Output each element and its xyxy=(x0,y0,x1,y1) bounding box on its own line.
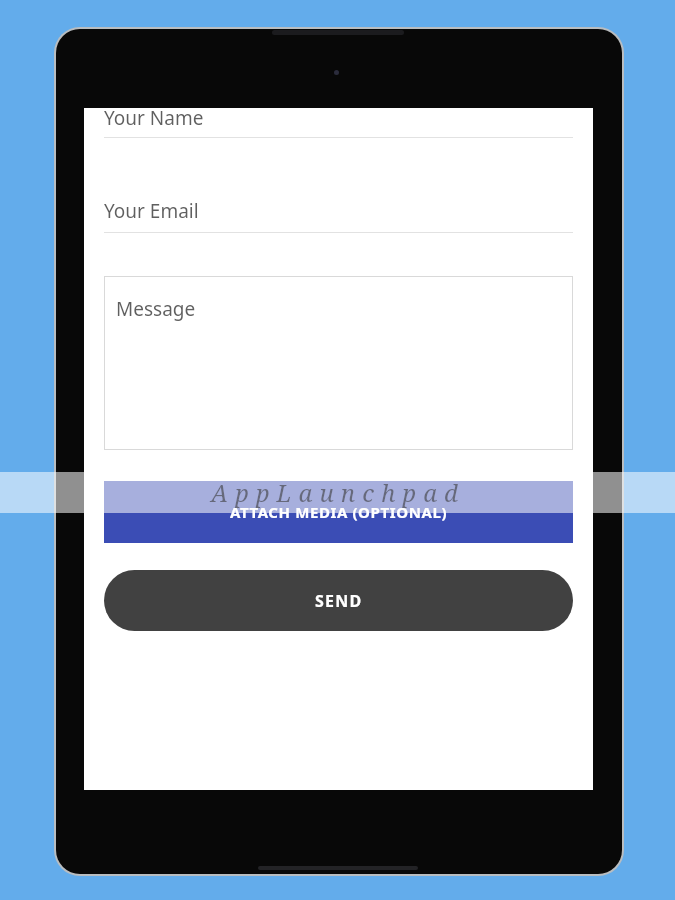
staticText: Message xyxy=(116,296,196,322)
staticText: SEND xyxy=(315,590,363,612)
staticText: AppLaunchpad xyxy=(211,476,465,509)
button[interactable]: Message xyxy=(104,276,573,450)
button[interactable]: SEND xyxy=(104,570,573,631)
staticText: Your Name xyxy=(104,105,204,131)
staticText: Your Email xyxy=(104,198,199,224)
button[interactable]: ATTACH MEDIA (OPTIONAL) xyxy=(104,481,573,543)
staticText: ATTACH MEDIA (OPTIONAL) xyxy=(230,502,448,522)
button[interactable]: Your Email xyxy=(104,191,573,231)
button[interactable]: Your Name xyxy=(104,99,573,137)
